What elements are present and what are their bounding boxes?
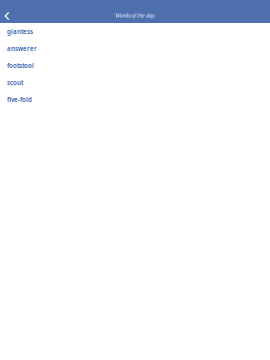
staticText: answerer xyxy=(7,44,37,53)
button[interactable]: five-fold xyxy=(0,91,270,108)
staticText: scout xyxy=(7,78,23,87)
button[interactable]: Back xyxy=(0,9,14,23)
button[interactable]: answerer xyxy=(0,40,270,57)
staticText: Words of the day xyxy=(115,12,155,19)
button[interactable]: giantess xyxy=(0,23,270,40)
staticText: giantess xyxy=(7,27,33,36)
staticText: footstool xyxy=(7,61,34,70)
button[interactable]: scout xyxy=(0,74,270,91)
staticText: five-fold xyxy=(7,95,32,104)
button[interactable]: footstool xyxy=(0,57,270,74)
